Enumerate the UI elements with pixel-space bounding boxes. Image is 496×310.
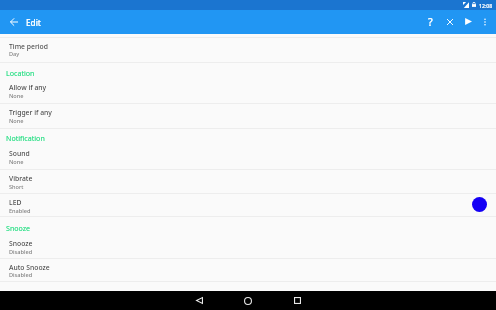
staticText: Day [9,50,20,58]
button[interactable]: Trigger if any [0,103,496,128]
staticText: Auto Snooze [9,263,50,272]
staticText: 12:08 [479,2,493,9]
button[interactable]: Snooze [0,234,496,259]
staticText: Snooze [9,239,33,248]
staticText: Disabled [9,248,33,256]
button[interactable]: More options [475,12,494,31]
staticText: Time period [9,42,48,51]
staticText: LED [9,198,22,207]
staticText: None [9,117,24,125]
staticText: Trigger if any [9,108,52,117]
staticText: ? [428,15,433,29]
staticText: Enabled [9,207,31,215]
button[interactable]: Play [459,12,478,31]
button[interactable]: Help [421,12,440,31]
button[interactable]: Recent apps [285,291,309,310]
button[interactable]: Navigate up [4,12,24,32]
staticText: Sound [9,149,30,158]
staticText: Short [9,183,24,191]
button[interactable]: Allow if any [0,78,496,102]
button[interactable]: Vibrate [0,170,496,193]
staticText: Notification [6,133,45,143]
staticText: Allow if any [9,83,47,92]
button[interactable]: Close [440,12,459,31]
staticText: Vibrate [9,174,33,183]
staticText: Edit [26,17,41,28]
button[interactable]: Home [236,291,260,310]
button[interactable]: Back [187,291,211,310]
button[interactable]: LED [0,194,496,217]
staticText: Location [6,68,35,78]
staticText: None [9,158,24,166]
button[interactable]: Auto Snooze [0,259,496,281]
staticText: Snooze [6,223,31,233]
staticText: Disabled [9,271,33,279]
staticText: None [9,92,24,100]
button[interactable]: Time period [0,38,496,62]
button[interactable]: Sound [0,145,496,169]
